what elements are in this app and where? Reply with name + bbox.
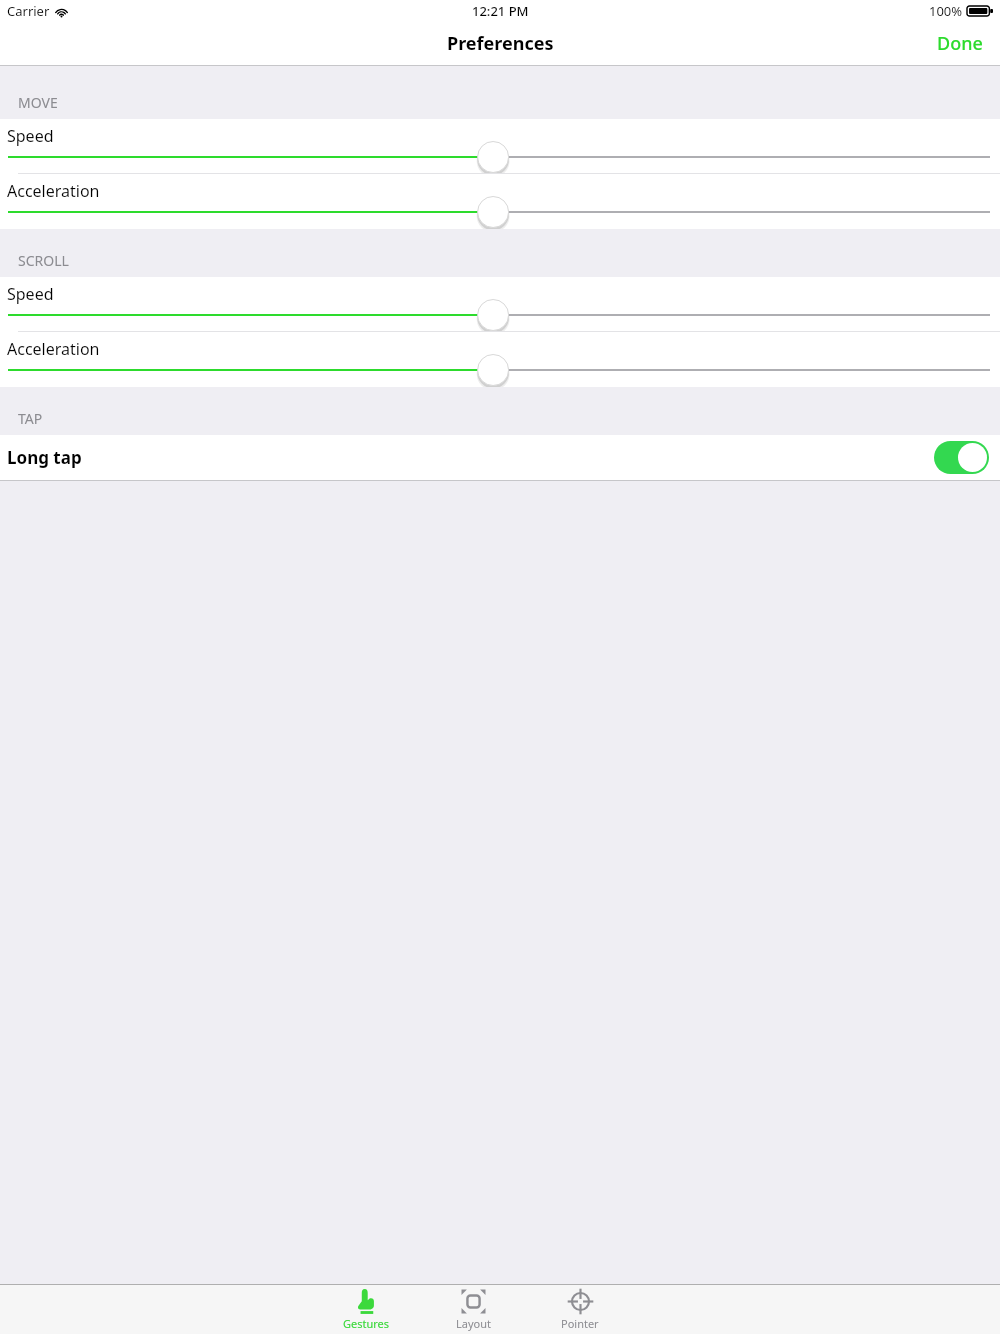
staticText: SCROLL (18, 251, 69, 270)
button[interactable]: Speed (0, 277, 1000, 332)
staticText: Done (937, 31, 983, 56)
staticText: Preferences (447, 31, 554, 56)
staticText: 100% (929, 2, 963, 20)
button[interactable]: Pointer (554, 1288, 606, 1331)
staticText: TAP (18, 409, 43, 428)
staticText: Acceleration (7, 180, 100, 202)
button[interactable]: Layout (447, 1288, 499, 1331)
button[interactable]: Acceleration (0, 332, 1000, 387)
staticText: Layout (456, 1316, 491, 1331)
staticText: Acceleration (7, 338, 100, 360)
staticText: Carrier (7, 2, 50, 20)
button[interactable]: Done (920, 22, 1000, 65)
button[interactable]: Long tap on (934, 441, 989, 474)
staticText: Pointer (561, 1316, 599, 1331)
button[interactable]: Acceleration (0, 174, 1000, 229)
button[interactable]: Long tap (0, 435, 1000, 480)
staticText: Gestures (343, 1316, 390, 1331)
button[interactable]: Speed (0, 119, 1000, 174)
staticText: 12:21 PM (472, 2, 529, 20)
staticText: Speed (7, 125, 54, 147)
staticText: MOVE (18, 93, 58, 112)
button[interactable]: Gestures (340, 1288, 392, 1331)
staticText: Speed (7, 283, 54, 305)
staticText: Long tap (7, 446, 82, 469)
